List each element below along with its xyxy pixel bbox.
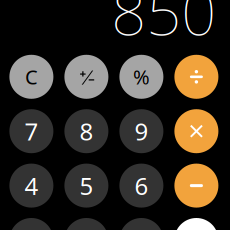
staticText: 6 <box>134 170 148 202</box>
button[interactable]: 5 <box>64 164 108 208</box>
button[interactable]: % <box>119 55 163 99</box>
staticText: 7 <box>24 115 38 147</box>
button[interactable]: Toggle sign <box>64 55 108 99</box>
button[interactable]: Subtract <box>174 164 218 208</box>
staticText: 5 <box>79 170 93 202</box>
button[interactable]: 1 <box>9 218 53 230</box>
button[interactable]: 3 <box>119 218 163 230</box>
staticText: 8 <box>79 115 93 147</box>
staticText: C <box>25 63 38 90</box>
button[interactable]: 2 <box>64 218 108 230</box>
button[interactable]: 6 <box>119 164 163 208</box>
button[interactable]: C <box>9 55 53 99</box>
staticText: % <box>133 63 150 90</box>
button[interactable]: Divide <box>174 55 218 99</box>
button[interactable]: 7 <box>9 109 53 153</box>
button[interactable]: 4 <box>9 164 53 208</box>
staticText: 4 <box>24 170 38 202</box>
button[interactable]: Multiply <box>174 109 218 153</box>
staticText: 850 <box>111 0 216 52</box>
button[interactable]: Equals <box>174 218 218 230</box>
staticText: 9 <box>134 115 148 147</box>
button[interactable]: 9 <box>119 109 163 153</box>
button[interactable]: 8 <box>64 109 108 153</box>
